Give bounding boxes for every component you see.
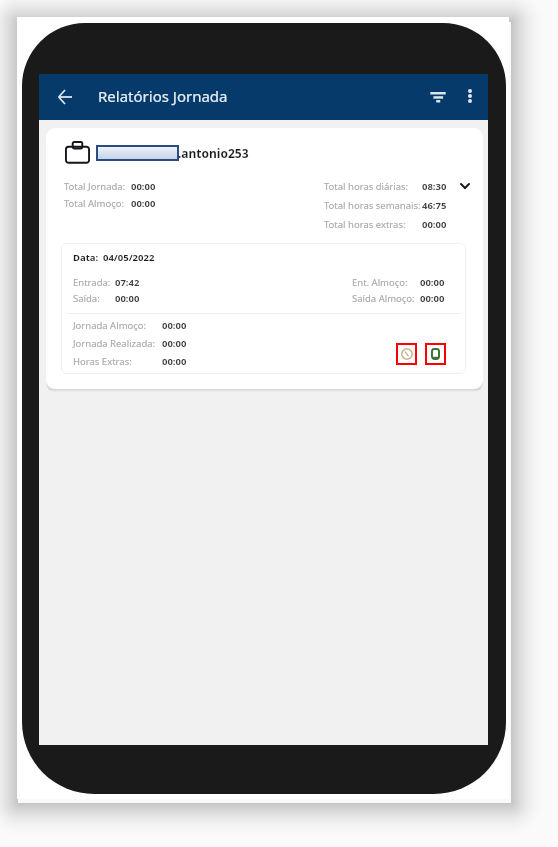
staticText: Ent. Almoço: — [352, 276, 408, 289]
staticText: 08:30 — [422, 180, 447, 193]
button[interactable]: Time record — [396, 343, 417, 365]
staticText: Horas Extras: — [73, 355, 132, 368]
button[interactable]: More options — [450, 76, 490, 116]
staticText: Saída: — [73, 292, 100, 305]
staticText: 04/05/2022 — [103, 251, 155, 264]
staticText: 46:75 — [422, 199, 447, 212]
staticText: Jornada Almoço: — [73, 319, 147, 332]
staticText: Total horas diárias: — [324, 180, 409, 193]
staticText: 00:00 — [162, 337, 187, 350]
staticText: 00:00 — [115, 292, 140, 305]
staticText: 00:00 — [162, 319, 187, 332]
staticText: Jornada Realizada: — [73, 337, 156, 350]
staticText: 00:00 — [131, 180, 156, 193]
staticText: 00:00 — [420, 292, 445, 305]
staticText: Total horas extras: — [324, 218, 406, 231]
staticText: 00:00 — [162, 355, 187, 368]
staticText: 00:00 — [420, 276, 445, 289]
staticText: Saída Almoço: — [352, 292, 415, 305]
staticText: Total horas semanais: — [324, 199, 421, 212]
staticText: Entrada: — [73, 276, 111, 289]
button[interactable]: Mobile device record — [425, 343, 446, 365]
staticText: 00:00 — [422, 218, 447, 231]
button[interactable]: Filter — [418, 77, 458, 117]
staticText: .antonio253 — [178, 145, 249, 161]
staticText: 00:00 — [131, 197, 156, 210]
staticText: Relatórios Jornada — [98, 86, 228, 106]
button[interactable]: Expand details — [455, 176, 475, 196]
staticText: Total Jornada: — [64, 180, 126, 193]
staticText: Data: — [73, 251, 99, 264]
button[interactable]: Back — [45, 77, 85, 117]
staticText: Total Almoço: — [64, 197, 125, 210]
staticText: 07:42 — [115, 276, 140, 289]
